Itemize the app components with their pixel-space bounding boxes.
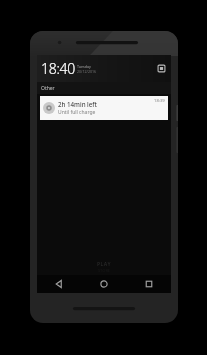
staticText: Until full charge <box>58 109 96 116</box>
button[interactable]: Settings <box>157 64 166 73</box>
staticText: 18:40 <box>41 59 75 78</box>
button[interactable]: Back <box>37 275 81 293</box>
staticText: Other <box>41 85 55 92</box>
button[interactable]: Recents <box>126 275 171 293</box>
button[interactable]: 2h 14min left <box>40 96 168 120</box>
button[interactable]: Home <box>81 275 126 293</box>
staticText: 2h 14min left <box>58 100 97 108</box>
staticText: Tuesday <box>77 64 91 69</box>
staticText: 20/12/2016 <box>77 69 97 74</box>
staticText: 18:39 <box>154 98 165 104</box>
